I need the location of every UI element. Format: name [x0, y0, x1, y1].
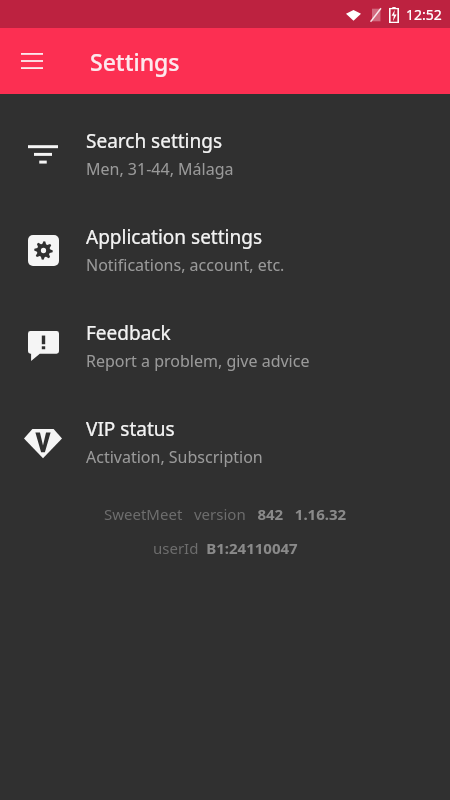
staticText: Men, 31-44, Málaga [86, 158, 234, 180]
staticText: Application settings [86, 224, 262, 250]
staticText: userId B1:24110047 [153, 538, 298, 558]
button[interactable]: Search settings [0, 106, 450, 202]
staticText: Search settings [86, 128, 223, 154]
staticText: Notifications, account, etc. [86, 254, 285, 276]
button[interactable]: Application settings [0, 202, 450, 298]
button[interactable]: Open navigation menu [8, 37, 56, 85]
staticText: Report a problem, give advice [86, 350, 310, 372]
staticText: Activation, Subscription [86, 446, 263, 468]
staticText: Settings [90, 46, 180, 77]
button[interactable]: VIP status [0, 394, 450, 490]
staticText: 12:52 [406, 5, 442, 24]
staticText: VIP status [86, 416, 175, 442]
staticText: SweetMeet version 842 1.16.32 [104, 504, 347, 524]
staticText: Feedback [86, 320, 171, 346]
button[interactable]: Feedback [0, 298, 450, 394]
